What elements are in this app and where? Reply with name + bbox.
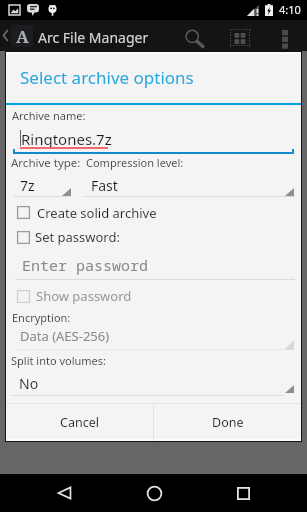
staticText: 7z <box>20 176 35 195</box>
button[interactable]: Checkbox <box>17 290 30 303</box>
staticText: Done <box>212 414 244 431</box>
staticText: Select archive options <box>20 66 194 89</box>
button[interactable]: Checkbox <box>17 206 30 219</box>
staticText: Archive type: <box>11 155 81 171</box>
staticText: A <box>16 25 29 47</box>
staticText: No <box>19 374 39 393</box>
staticText: Data (AES-256) <box>20 327 110 345</box>
staticText: Split into volumes: <box>11 353 107 368</box>
button[interactable]: Done <box>154 404 301 441</box>
staticText: Compression level: <box>86 155 184 170</box>
staticText: Enter password <box>22 255 149 275</box>
button[interactable]: Home <box>130 474 178 512</box>
button[interactable]: More options <box>273 20 297 51</box>
staticText: Show password <box>36 287 132 305</box>
button[interactable]: Select items <box>227 20 253 51</box>
staticText: Encryption: <box>12 310 71 325</box>
staticText: 4:10 <box>279 2 301 17</box>
button[interactable]: Navigate up <box>0 20 11 51</box>
staticText: Ringtones.7z <box>21 129 112 149</box>
staticText: Cancel <box>60 414 99 431</box>
button[interactable]: Checkbox <box>17 231 30 244</box>
button[interactable]: Back <box>40 474 88 512</box>
button[interactable]: Cancel <box>6 404 153 441</box>
button[interactable]: Search <box>179 20 207 51</box>
staticText: Create solid archive <box>37 204 157 222</box>
staticText: Fast <box>91 176 118 195</box>
staticText: Set password: <box>35 228 120 246</box>
button[interactable]: Recent apps <box>219 474 267 512</box>
staticText: Arc File Manager <box>38 28 149 47</box>
staticText: Archive name: <box>12 108 86 123</box>
